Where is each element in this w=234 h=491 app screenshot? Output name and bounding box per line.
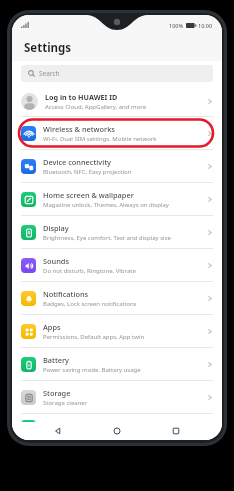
staticText: Home screen & wallpaper: [43, 190, 134, 200]
staticText: Magazine unlock, Themes, Always on displ…: [43, 201, 169, 209]
button[interactable]: Back: [45, 422, 71, 440]
button[interactable]: Device connectivity: [12, 150, 222, 182]
staticText: Storage: [43, 388, 71, 398]
button[interactable]: Storage: [12, 381, 222, 413]
button[interactable]: Log in to HUAWEI ID: [12, 86, 222, 116]
button[interactable]: Home screen & wallpaper: [12, 183, 222, 215]
staticText: Wi-Fi, Dual SIM settings, Mobile network: [43, 135, 157, 143]
staticText: Wireless & networks: [43, 124, 115, 134]
staticText: Notifications: [43, 289, 89, 299]
button[interactable]: Battery: [12, 348, 222, 380]
staticText: Sounds: [43, 256, 70, 266]
button[interactable]: Recent apps: [163, 422, 189, 440]
staticText: 100%: [169, 22, 184, 29]
button[interactable]: Digital balance: [12, 414, 222, 440]
button[interactable]: Display: [12, 216, 222, 248]
staticText: Display: [43, 223, 69, 233]
staticText: Access Cloud, AppGallery, and more: [45, 103, 147, 111]
staticText: Bluetooth, NFC, Easy projection: [43, 168, 132, 176]
staticText: Device connectivity: [43, 157, 111, 167]
staticText: Do not disturb, Ringtone, Vibrate: [43, 267, 136, 275]
staticText: Digital balance: [43, 422, 96, 432]
button[interactable]: Notifications: [12, 282, 222, 314]
staticText: Brightness, Eye comfort, Text and displa…: [43, 234, 171, 242]
button[interactable]: Wireless & networks: [12, 117, 222, 149]
button[interactable]: Home: [104, 422, 130, 440]
staticText: Storage cleaner: [43, 399, 88, 407]
staticText: Apps: [43, 322, 61, 332]
staticText: 10:00: [198, 22, 213, 29]
button[interactable]: Search: [21, 65, 213, 82]
staticText: Log in to HUAWEI ID: [45, 92, 118, 102]
staticText: Search: [39, 69, 60, 78]
staticText: Settings: [24, 40, 72, 56]
staticText: Power saving mode, Battery usage: [43, 366, 141, 374]
staticText: Battery: [43, 355, 69, 365]
button[interactable]: Sounds: [12, 249, 222, 281]
staticText: Permissions, Default apps, App twin: [43, 333, 145, 341]
staticText: Badges, Lock screen notifications: [43, 300, 137, 308]
button[interactable]: Apps: [12, 315, 222, 347]
